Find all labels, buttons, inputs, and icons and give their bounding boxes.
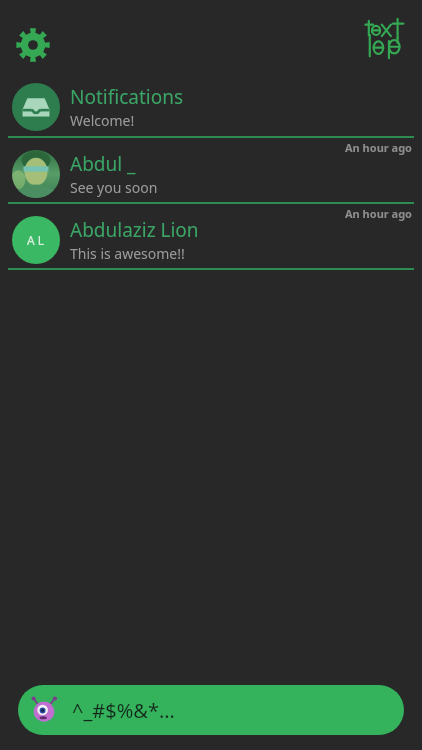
staticText: An hour ago — [345, 206, 412, 221]
staticText: ^_#$%&*… — [72, 697, 175, 724]
button[interactable]: An hour ago — [0, 138, 422, 202]
button[interactable]: Settings — [12, 24, 54, 66]
staticText: Welcome! — [70, 111, 135, 130]
staticText: An hour ago — [345, 140, 412, 155]
button[interactable]: An hour ago — [0, 204, 422, 268]
staticText: This is awesome!! — [70, 244, 185, 263]
button[interactable]: ^_#$%&*… — [18, 685, 404, 735]
staticText: Notifications — [70, 84, 184, 110]
button[interactable]: Texter logo — [362, 14, 414, 66]
staticText: See you soon — [70, 178, 158, 197]
staticText: Abdulaziz Lion — [70, 217, 199, 243]
staticText: A L — [27, 232, 45, 248]
staticText: Abdul _ — [70, 151, 136, 177]
button[interactable]: Notifications — [0, 78, 422, 136]
